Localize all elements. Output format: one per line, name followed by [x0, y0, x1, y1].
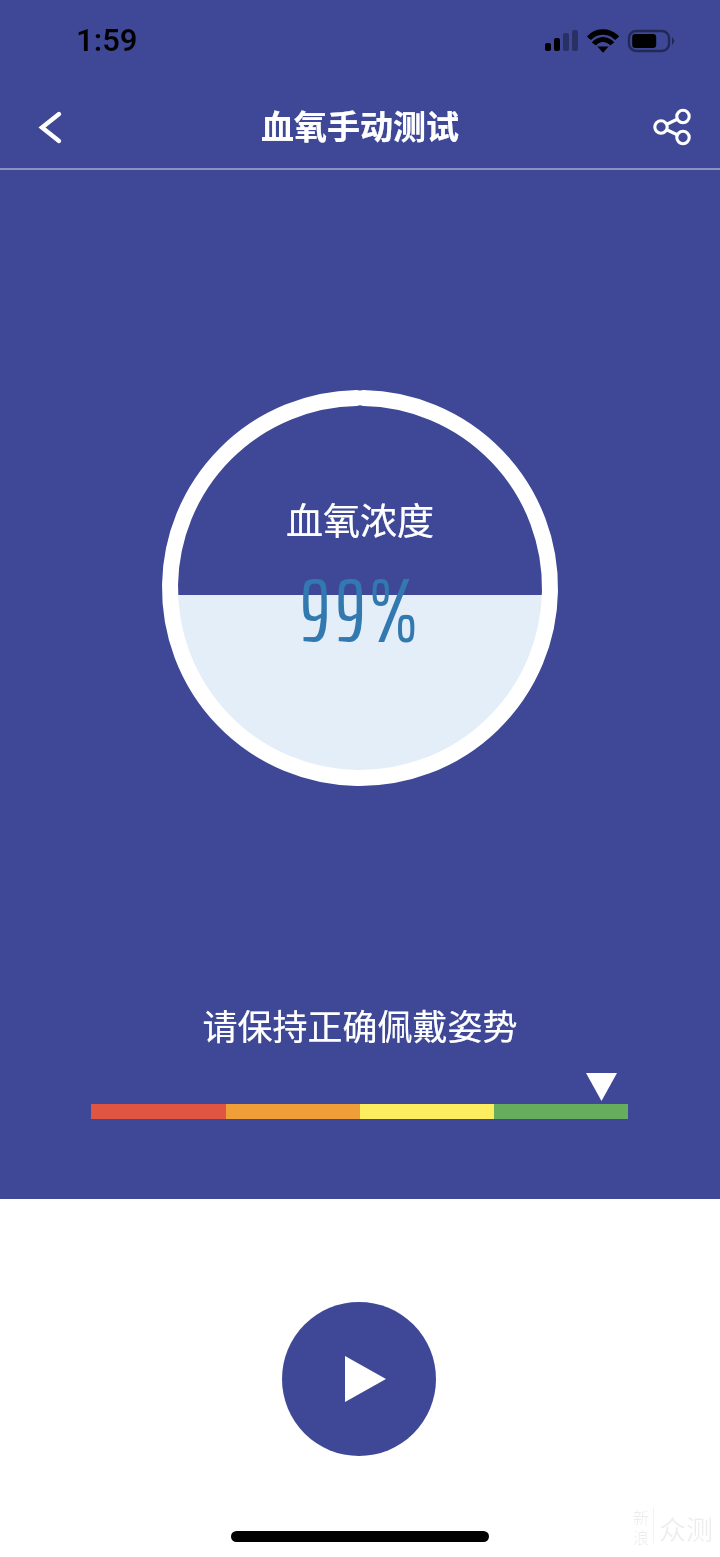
staticText: 请保持正确佩戴姿势	[0, 999, 720, 1050]
staticText: 血氧手动测试	[261, 101, 459, 149]
button[interactable]: Back	[14, 91, 86, 163]
staticText: 血氧浓度	[286, 492, 434, 546]
staticText: 浪	[633, 1525, 650, 1548]
staticText: 99%	[298, 560, 422, 659]
button[interactable]: Start measurement	[282, 1302, 436, 1456]
staticText: 众测	[659, 1509, 713, 1548]
button[interactable]: Share	[634, 91, 706, 163]
staticText: 1:59	[76, 22, 138, 58]
staticText: 新	[633, 1505, 650, 1528]
